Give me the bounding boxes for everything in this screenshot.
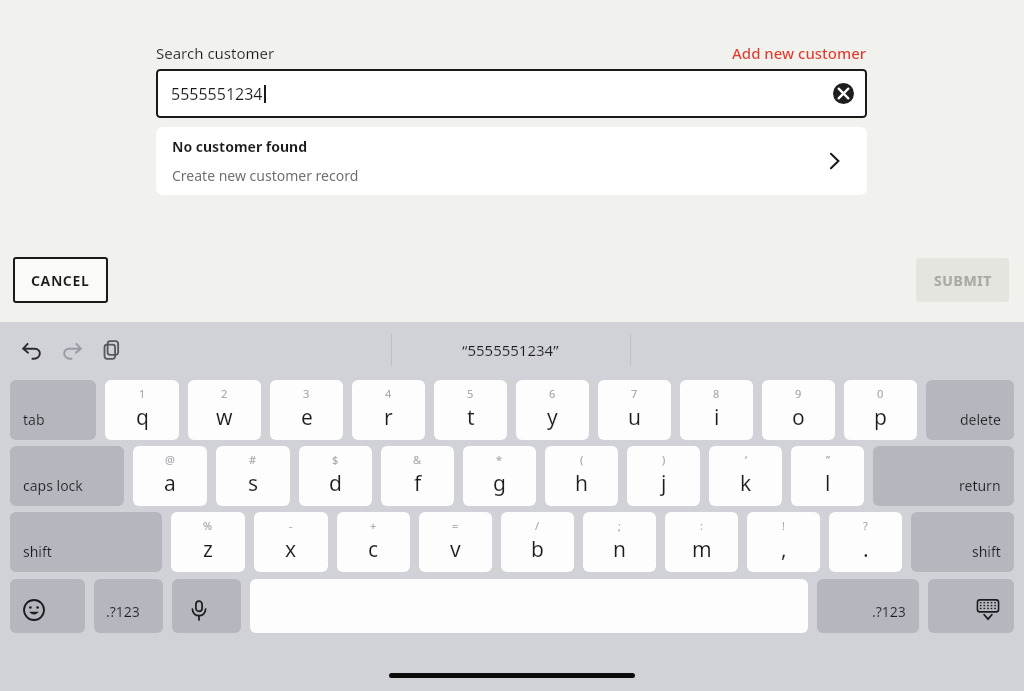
button[interactable]: & xyxy=(381,446,454,506)
staticText: r xyxy=(384,403,393,432)
button[interactable]: 0 xyxy=(844,380,917,440)
staticText: .?123 xyxy=(872,602,906,621)
staticText: a xyxy=(164,469,176,498)
staticText: f xyxy=(414,469,422,498)
staticText: g xyxy=(493,469,506,498)
button[interactable]: return xyxy=(873,446,1014,506)
button[interactable]: $ xyxy=(299,446,372,506)
button[interactable]: Add new customer xyxy=(732,43,867,63)
button[interactable]: shift xyxy=(911,512,1014,572)
staticText: & xyxy=(413,452,422,467)
staticText: , xyxy=(781,535,787,564)
staticText: return xyxy=(959,476,1001,495)
button[interactable]: Clear text xyxy=(833,83,854,104)
button[interactable]: 1 xyxy=(105,380,179,440)
staticText: # xyxy=(249,452,257,467)
button[interactable]: ? xyxy=(829,512,902,572)
button[interactable]: SUBMIT xyxy=(916,258,1009,302)
staticText: Add new customer xyxy=(732,43,867,63)
button[interactable]: Undo xyxy=(16,334,48,366)
button[interactable]: Dictation xyxy=(172,579,241,633)
button[interactable]: ! xyxy=(747,512,820,572)
staticText: 9 xyxy=(795,386,802,401)
staticText: u xyxy=(628,403,641,432)
button[interactable]: delete xyxy=(926,380,1014,440)
button[interactable]: Hide keyboard xyxy=(928,579,1014,633)
staticText: n xyxy=(613,535,626,564)
button[interactable]: ( xyxy=(545,446,618,506)
button[interactable]: CANCEL xyxy=(13,257,108,303)
staticText: 8 xyxy=(713,386,720,401)
button[interactable]: shift xyxy=(10,512,162,572)
staticText: y xyxy=(547,403,558,432)
button[interactable]: 5 xyxy=(434,380,507,440)
staticText: b xyxy=(531,535,544,564)
button[interactable]: ” xyxy=(791,446,864,506)
staticText: 2 xyxy=(221,386,228,401)
staticText: CANCEL xyxy=(31,271,90,290)
staticText: + xyxy=(370,518,377,533)
staticText: shift xyxy=(23,542,52,561)
staticText: ; xyxy=(618,518,621,533)
button[interactable]: + xyxy=(337,512,410,572)
staticText: $ xyxy=(332,452,339,467)
button[interactable]: No customer found xyxy=(156,127,867,195)
staticText: 5555551234 xyxy=(171,83,263,105)
button[interactable]: .?123 xyxy=(817,579,919,633)
button[interactable]: 3 xyxy=(270,380,343,440)
staticText: “5555551234” xyxy=(462,340,559,360)
button[interactable]: @ xyxy=(133,446,207,506)
button[interactable]: 6 xyxy=(516,380,589,440)
staticText: v xyxy=(450,535,461,564)
button[interactable]: / xyxy=(501,512,574,572)
button[interactable]: Emoji xyxy=(10,579,85,633)
staticText: : xyxy=(700,518,703,533)
button[interactable]: 2 xyxy=(188,380,261,440)
staticText: 1 xyxy=(139,386,146,401)
staticText: p xyxy=(874,403,887,432)
button[interactable]: * xyxy=(463,446,536,506)
button[interactable]: ; xyxy=(583,512,656,572)
button[interactable]: 5555551234 xyxy=(156,69,867,118)
staticText: 7 xyxy=(631,386,638,401)
staticText: @ xyxy=(165,452,175,467)
staticText: No customer found xyxy=(172,137,308,156)
button[interactable]: .?123 xyxy=(94,579,163,633)
button[interactable]: 4 xyxy=(352,380,425,440)
staticText: h xyxy=(575,469,588,498)
button[interactable]: - xyxy=(254,512,328,572)
button[interactable]: Paste xyxy=(96,334,128,366)
staticText: l xyxy=(825,469,831,498)
button[interactable]: caps lock xyxy=(10,446,124,506)
button[interactable]: # xyxy=(216,446,290,506)
staticText: x xyxy=(285,535,297,564)
staticText: ‘ xyxy=(745,452,747,467)
button[interactable]: = xyxy=(419,512,492,572)
staticText: ) xyxy=(662,452,666,467)
button[interactable]: : xyxy=(665,512,738,572)
staticText: delete xyxy=(960,410,1001,429)
button[interactable]: tab xyxy=(10,380,96,440)
button[interactable]: Redo xyxy=(56,334,88,366)
staticText: ! xyxy=(782,518,785,533)
button[interactable]: % xyxy=(171,512,245,572)
staticText: ( xyxy=(580,452,584,467)
button[interactable]: 8 xyxy=(680,380,753,440)
button[interactable]: “5555551234” xyxy=(391,322,630,377)
staticText: e xyxy=(301,403,313,432)
staticText: 5 xyxy=(467,386,474,401)
staticText: s xyxy=(248,469,259,498)
staticText: 4 xyxy=(385,386,392,401)
button[interactable]: 9 xyxy=(762,380,835,440)
staticText: 6 xyxy=(549,386,556,401)
staticText: .?123 xyxy=(106,602,140,621)
button[interactable]: ‘ xyxy=(709,446,782,506)
staticText: 0 xyxy=(877,386,884,401)
staticText: 3 xyxy=(303,386,310,401)
staticText: q xyxy=(136,403,149,432)
button[interactable]: ) xyxy=(627,446,700,506)
button[interactable]: 7 xyxy=(598,380,671,440)
staticText: k xyxy=(740,469,752,498)
staticText: ” xyxy=(826,452,830,467)
